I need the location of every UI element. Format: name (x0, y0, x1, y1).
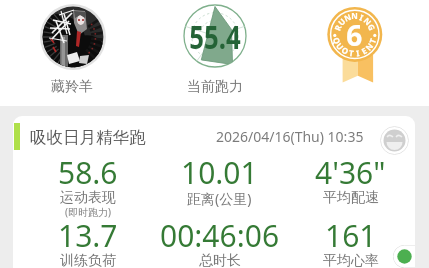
staticText: 运动表现 (60, 189, 116, 207)
button[interactable]: 58.6 (22, 152, 154, 225)
staticText: 吸收日月精华跑 (30, 127, 146, 148)
button[interactable]: Map (393, 245, 415, 268)
staticText: 当前跑力 (187, 78, 243, 96)
staticText: 训练负荷 (60, 252, 116, 268)
button[interactable]: Feeling rating (380, 126, 409, 155)
button[interactable]: 10.01 (154, 152, 285, 212)
staticText: 2026/04/16(Thu) 10:35 (216, 127, 364, 146)
button[interactable]: 161 (285, 215, 415, 268)
staticText: (即时跑力) (65, 205, 111, 219)
button[interactable]: 00:46:06 (154, 215, 285, 268)
button[interactable]: 4'36" (285, 152, 415, 211)
staticText: 55.4 (180, 14, 250, 59)
staticText: 13.7 (58, 215, 118, 256)
staticText: 平均心率 (323, 252, 379, 268)
staticText: 10.01 (181, 152, 258, 193)
staticText: 总时长 (199, 252, 241, 268)
button[interactable]: Current running power (183, 4, 247, 68)
staticText: 00:46:06 (160, 215, 280, 256)
staticText: 161 (325, 215, 377, 256)
staticText: 藏羚羊 (51, 78, 93, 96)
button[interactable]: Profile (40, 4, 106, 70)
staticText: 58.6 (58, 152, 118, 193)
button[interactable]: Running quotient badge (320, 2, 390, 84)
staticText: 距离(公里) (187, 189, 252, 208)
staticText: 平均配速 (323, 189, 379, 207)
staticText: 4'36" (315, 152, 386, 193)
button[interactable]: 13.7 (22, 215, 154, 268)
